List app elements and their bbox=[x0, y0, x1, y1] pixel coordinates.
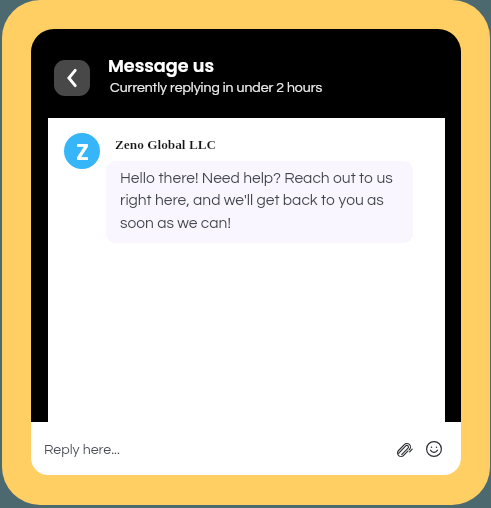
button[interactable]: Attach file bbox=[391, 437, 417, 463]
button[interactable]: Emoji bbox=[421, 436, 447, 462]
button[interactable]: Back bbox=[54, 60, 90, 96]
staticText: Currently replying in under 2 hours bbox=[110, 81, 323, 95]
staticText: Zeno Global LLC bbox=[115, 137, 217, 152]
staticText: Reply here... bbox=[44, 442, 120, 457]
staticText: Hello there! Need help? Reach out to us … bbox=[120, 170, 393, 232]
staticText: Z bbox=[76, 136, 89, 167]
staticText: Message us bbox=[108, 54, 214, 79]
